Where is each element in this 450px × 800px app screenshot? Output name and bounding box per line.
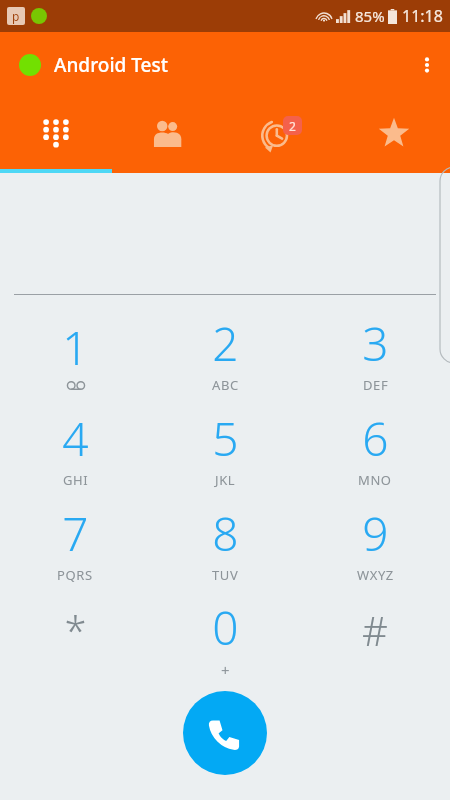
button[interactable]: 3: [300, 305, 450, 400]
staticText: ABC: [212, 376, 239, 394]
button[interactable]: 4: [0, 400, 150, 495]
staticText: 3: [362, 312, 389, 375]
button[interactable]: 2: [150, 305, 300, 400]
button[interactable]: #: [300, 590, 450, 685]
staticText: 7: [62, 502, 89, 565]
staticText: PQRS: [57, 566, 93, 584]
staticText: TUV: [212, 566, 239, 584]
staticText: 11:18: [402, 5, 443, 27]
staticText: 85%: [355, 6, 385, 26]
button[interactable]: 9: [300, 495, 450, 590]
staticText: 2: [212, 312, 239, 375]
staticText: 2: [289, 118, 296, 134]
button[interactable]: More options: [402, 41, 450, 89]
staticText: *: [64, 603, 87, 657]
staticText: p: [12, 8, 20, 24]
button[interactable]: 8: [150, 495, 300, 590]
staticText: 8: [212, 502, 239, 565]
staticText: #: [362, 603, 388, 657]
staticText: DEF: [363, 376, 389, 394]
button[interactable]: Favorites tab: [337, 97, 450, 169]
button[interactable]: 7: [0, 495, 150, 590]
staticText: 1: [62, 316, 89, 379]
staticText: WXYZ: [357, 566, 394, 584]
button[interactable]: Contacts tab: [112, 97, 224, 169]
button[interactable]: *: [0, 590, 150, 685]
staticText: Android Test: [54, 52, 169, 78]
button[interactable]: Call: [183, 691, 267, 775]
staticText: 5: [212, 407, 239, 470]
button[interactable]: 6: [300, 400, 450, 495]
button[interactable]: 5: [150, 400, 300, 495]
staticText: 0: [212, 596, 239, 659]
button[interactable]: Keypad tab: [0, 97, 112, 169]
staticText: MNO: [358, 471, 392, 489]
staticText: GHI: [63, 471, 89, 489]
staticText: JKL: [215, 471, 236, 489]
button[interactable]: 1: [0, 305, 150, 400]
staticText: 4: [62, 407, 89, 470]
staticText: +: [221, 660, 231, 680]
button[interactable]: 0: [150, 590, 300, 685]
button[interactable]: Recents tab: [224, 97, 337, 169]
staticText: 9: [362, 502, 389, 565]
staticText: 6: [362, 407, 389, 470]
